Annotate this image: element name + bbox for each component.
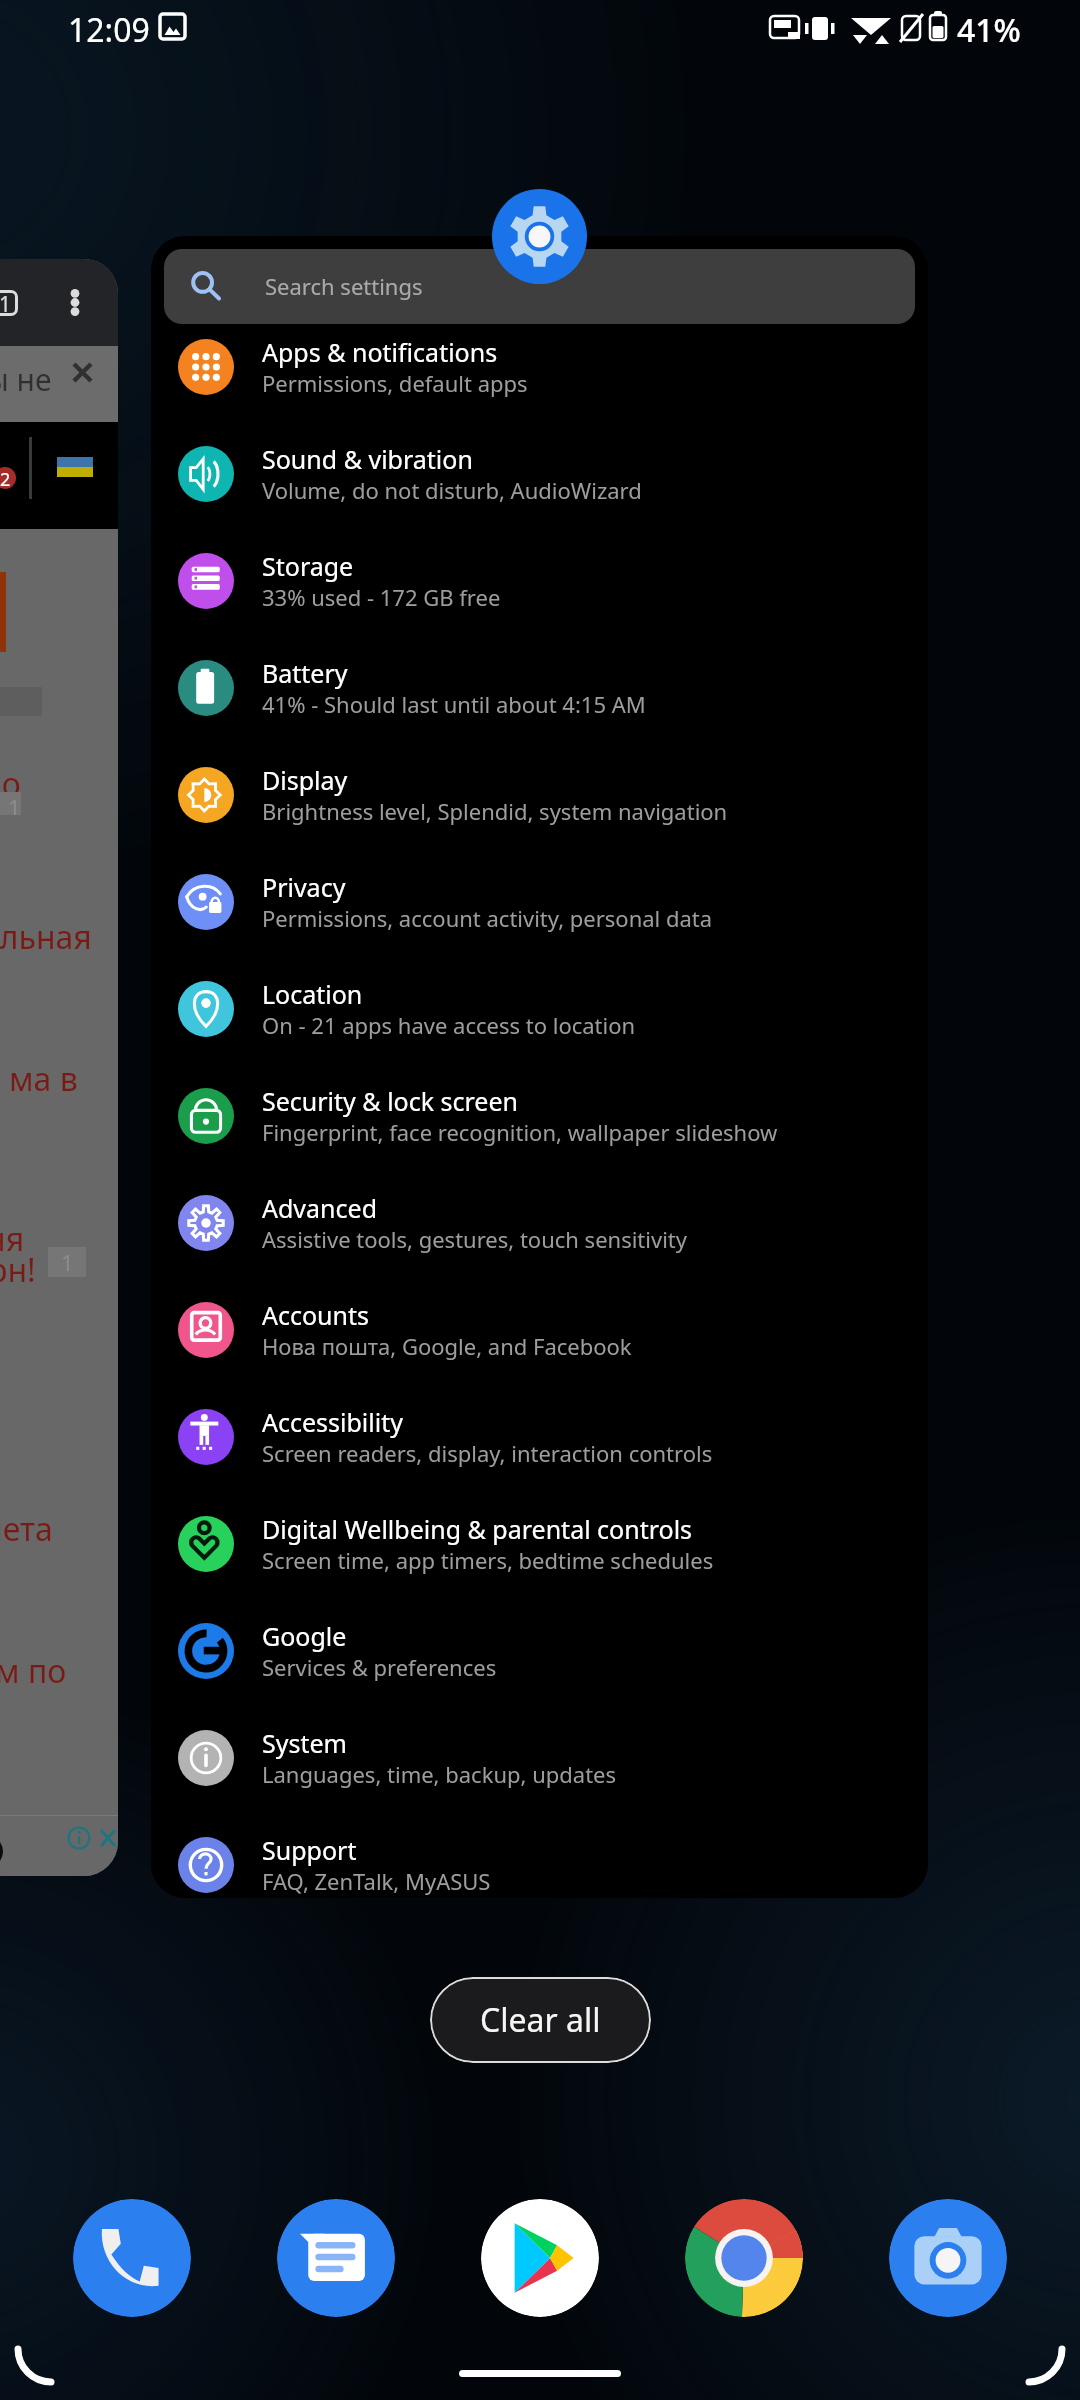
staticText: Volume, do not disturb, AudioWizard <box>262 475 642 505</box>
button[interactable]: Advanced <box>151 1169 928 1276</box>
button[interactable]: Digital Wellbeing & parental controls <box>151 1490 928 1597</box>
staticText: 2 <box>0 467 11 489</box>
button[interactable]: Privacy <box>151 848 928 955</box>
staticText: но <box>0 762 21 806</box>
staticText: ом по <box>0 1649 67 1693</box>
staticText: Screen time, app timers, bedtime schedul… <box>262 1545 714 1575</box>
button[interactable]: Battery <box>151 634 928 741</box>
staticText: Apps & notifications <box>262 335 498 369</box>
button[interactable]: Phone <box>73 2199 191 2317</box>
staticText: 1 <box>8 792 21 815</box>
button[interactable]: Google <box>151 1597 928 1704</box>
button[interactable]: Accounts <box>151 1276 928 1383</box>
staticText: Нова пошта, Google, and Facebook <box>262 1331 632 1361</box>
staticText: Clear all <box>480 1998 601 2042</box>
staticText: Search settings <box>265 271 423 301</box>
button[interactable]: Settings app <box>492 189 587 284</box>
staticText: 33% used - 172 GB free <box>262 582 501 612</box>
staticText: 1 <box>0 290 12 316</box>
staticText: Google <box>262 1619 347 1653</box>
button[interactable]: Chrome <box>685 2199 803 2317</box>
button[interactable]: Security & lock screen <box>151 1062 928 1169</box>
staticText: грн! <box>0 1248 36 1292</box>
button[interactable]: Play Store <box>481 2199 599 2317</box>
staticText: Battery <box>262 656 348 690</box>
button[interactable]: Clear all <box>430 1977 651 2063</box>
button[interactable]: Accessibility <box>151 1383 928 1490</box>
staticText: Security & lock screen <box>262 1084 519 1118</box>
staticText: FAQ, ZenTalk, MyASUS <box>262 1866 491 1896</box>
button[interactable]: Storage <box>151 527 928 634</box>
button[interactable]: Location <box>151 955 928 1062</box>
staticText: Support <box>262 1833 357 1867</box>
staticText: Services & preferences <box>262 1652 497 1682</box>
staticText: Storage <box>262 549 354 583</box>
staticText: Location <box>262 977 363 1011</box>
staticText: System <box>262 1726 347 1760</box>
staticText: лета <box>0 1507 53 1551</box>
button[interactable]: Support <box>151 1811 928 1898</box>
staticText: тальная <box>0 915 92 959</box>
staticText: Permissions, default apps <box>262 368 528 398</box>
button[interactable]: System <box>151 1704 928 1811</box>
staticText: ма в <box>9 1057 78 1101</box>
button[interactable]: Camera <box>889 2199 1007 2317</box>
button[interactable]: Apps & notifications <box>151 313 928 420</box>
button[interactable]: Sound & vibration <box>151 420 928 527</box>
button[interactable]: Display <box>151 741 928 848</box>
button[interactable]: Settings recent task <box>151 236 928 1898</box>
staticText: Display <box>262 763 348 797</box>
staticText: 41% - Should last until about 4:15 AM <box>262 689 646 719</box>
staticText: Brightness level, Splendid, system navig… <box>262 796 728 826</box>
staticText: Sound & vibration <box>262 442 473 476</box>
staticText: Permissions, account activity, personal … <box>262 903 713 933</box>
staticText: On - 21 apps have access to location <box>262 1010 636 1040</box>
staticText: Digital Wellbeing & parental controls <box>262 1512 693 1546</box>
button[interactable]: Messages <box>277 2199 395 2317</box>
staticText: Advanced <box>262 1191 378 1225</box>
staticText: 1 <box>61 1247 74 1277</box>
staticText: Accessibility <box>262 1405 403 1439</box>
staticText: Screen readers, display, interaction con… <box>262 1438 713 1468</box>
staticText: Accounts <box>262 1298 370 1332</box>
button[interactable]: Search settings <box>164 249 915 324</box>
button[interactable]: Chrome recent task <box>0 259 118 1876</box>
staticText: Assistive tools, gestures, touch sensiti… <box>262 1224 687 1254</box>
staticText: 12:09 <box>68 8 150 52</box>
staticText: Privacy <box>262 870 346 904</box>
staticText: 41% <box>957 8 1021 52</box>
staticText: ня <box>0 1217 25 1261</box>
staticText: ы не <box>0 359 52 400</box>
staticText: Languages, time, backup, updates <box>262 1759 617 1789</box>
staticText: Fingerprint, face recognition, wallpaper… <box>262 1117 778 1147</box>
